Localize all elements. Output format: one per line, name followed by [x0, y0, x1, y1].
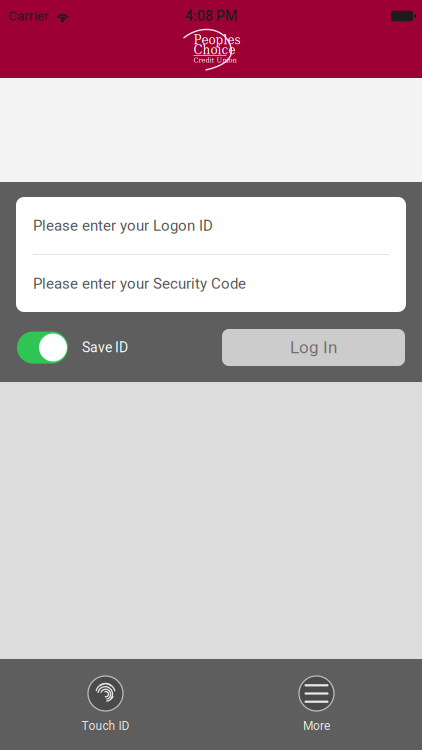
- staticText: Peoples: [193, 33, 240, 47]
- staticText: 4:08 PM: [185, 8, 237, 24]
- staticText: More: [303, 719, 330, 733]
- staticText: Please enter your Security Code: [33, 275, 246, 292]
- staticText: Save ID: [82, 339, 128, 356]
- button[interactable]: Log In: [222, 329, 405, 366]
- staticText: Carrier: [8, 8, 49, 24]
- staticText: Log In: [290, 337, 337, 357]
- staticText: Choice: [193, 43, 235, 57]
- button[interactable]: Save ID: [17, 331, 68, 363]
- staticText: Credit Union: [193, 56, 236, 64]
- staticText: Please enter your Logon ID: [33, 217, 213, 234]
- button[interactable]: More: [211, 676, 422, 733]
- staticText: Touch ID: [81, 719, 129, 733]
- button[interactable]: Touch ID: [0, 676, 211, 733]
